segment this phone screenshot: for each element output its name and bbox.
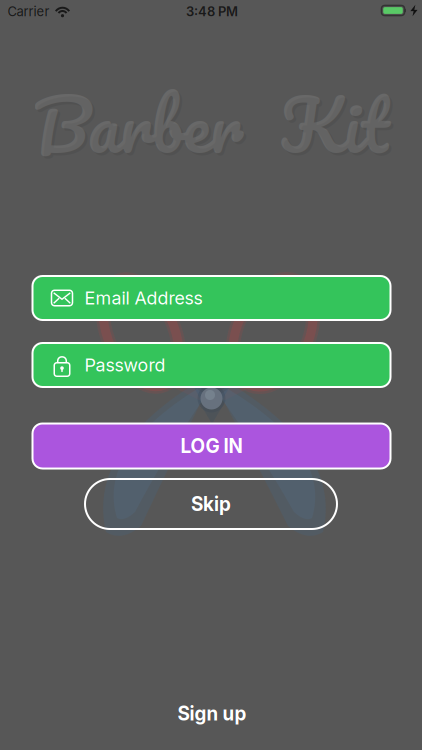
- staticText: Sign up: [177, 702, 246, 725]
- staticText: LOG IN: [180, 435, 242, 457]
- button[interactable]: LOG IN: [32, 423, 390, 468]
- staticText: Email Address: [84, 287, 202, 309]
- button[interactable]: Email Address: [32, 276, 390, 320]
- staticText: 3:48 PM: [186, 4, 238, 19]
- button[interactable]: Skip: [85, 479, 337, 529]
- staticText: Barber Kit: [33, 64, 388, 184]
- staticText: Barber Kit: [36, 67, 391, 186]
- button[interactable]: Sign up: [177, 702, 246, 725]
- staticText: Carrier: [7, 4, 49, 19]
- button[interactable]: Password: [32, 343, 390, 387]
- staticText: Password: [84, 354, 165, 376]
- staticText: Skip: [191, 493, 231, 515]
